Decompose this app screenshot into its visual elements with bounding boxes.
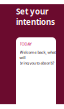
staticText: Set your <box>16 6 49 17</box>
staticText: intentions <box>16 17 55 27</box>
staticText: TODAY <box>19 41 31 46</box>
staticText: Welcome back, what will bring you to abs… <box>19 50 55 65</box>
